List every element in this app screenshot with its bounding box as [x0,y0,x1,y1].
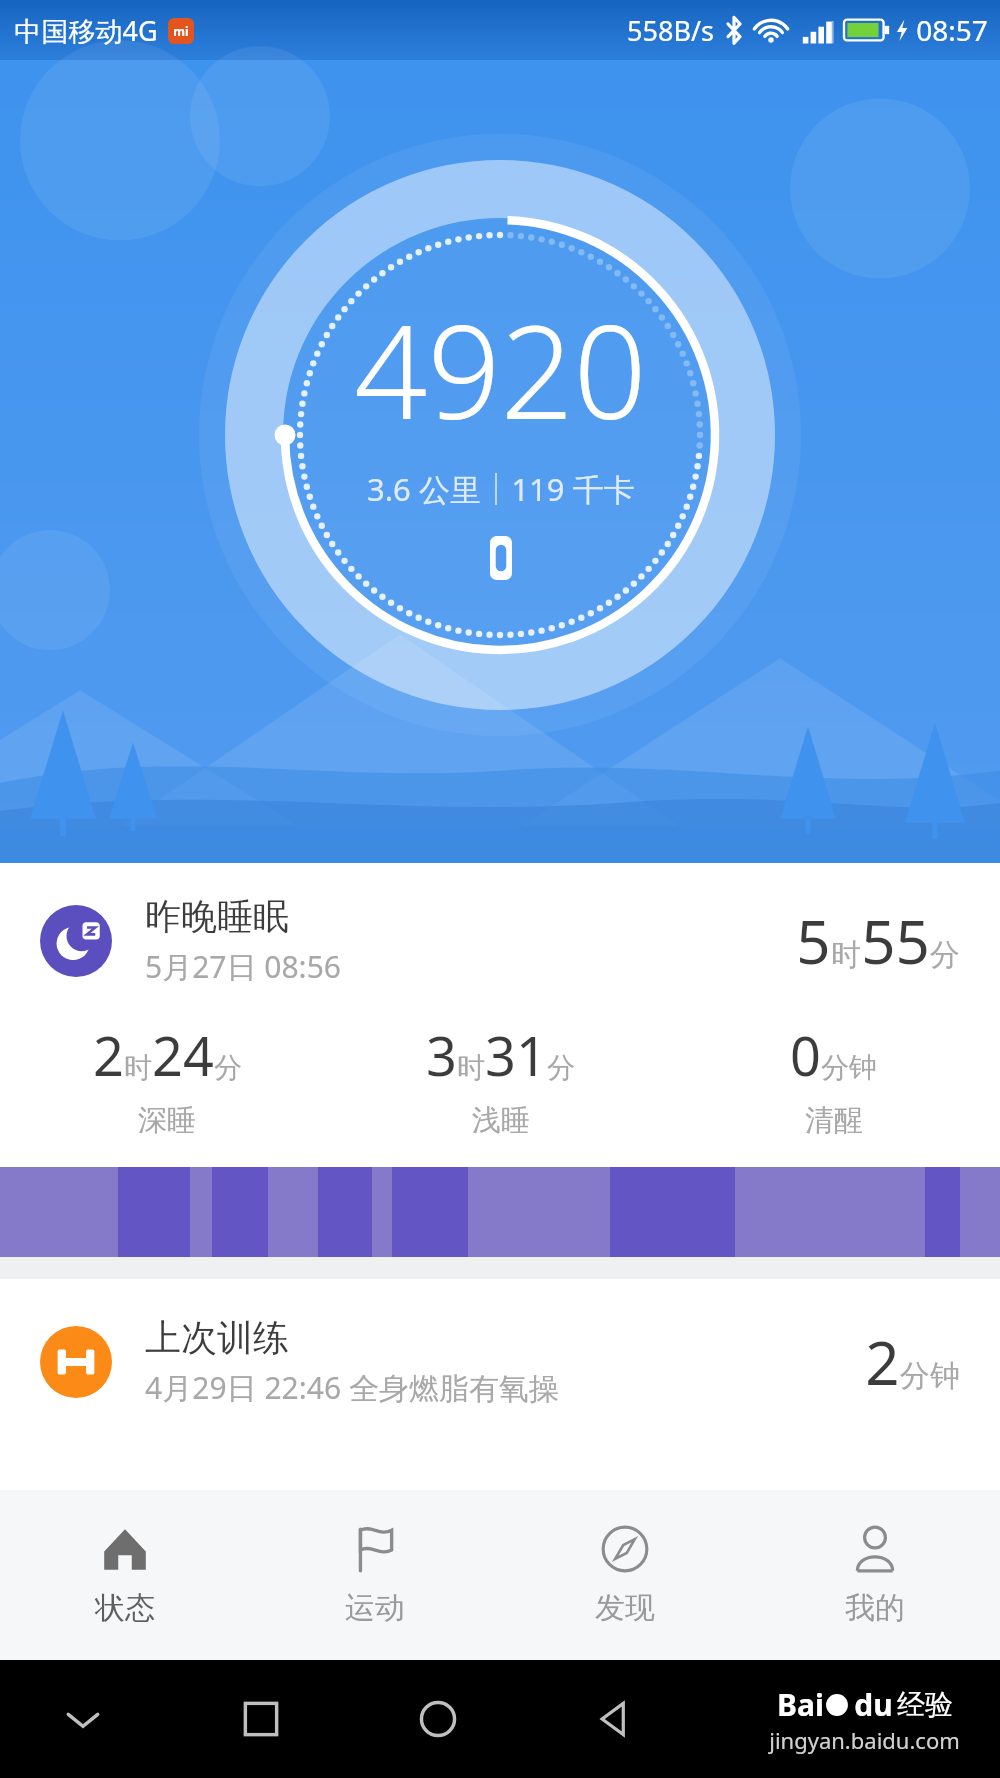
staticText: 4月29日 22:46 全身燃脂有氧操 [145,1367,559,1408]
button[interactable]: 我的 [750,1490,1000,1660]
staticText: 时 [831,936,861,974]
button[interactable]: 运动 [250,1490,500,1660]
staticText: 时 [124,1050,152,1085]
staticText: 分 [547,1050,575,1085]
staticText: 浅睡 [472,1102,530,1139]
button[interactable] [0,1167,1000,1257]
button[interactable]: 上次训练 [0,1279,1000,1444]
staticText: 119 千卡 [511,468,635,510]
button[interactable]: 昨晚睡眠 [0,863,1000,1167]
button[interactable]: Hide keyboard [60,1696,106,1742]
staticText: 分 [930,936,960,974]
staticText: 3 [426,1018,457,1092]
staticText: Bai [777,1684,824,1725]
staticText: 中国移动4G [14,12,158,49]
staticText: 55 [861,900,930,982]
button[interactable]: Back [592,1696,638,1742]
staticText: 发现 [595,1589,655,1627]
staticText: 3.6 公里 [367,468,481,510]
staticText: 5 [796,900,831,982]
other: Band [490,536,512,580]
staticText: 5月27日 08:56 [145,946,341,987]
staticText: 清醒 [805,1102,863,1139]
staticText: 2 [865,1321,900,1403]
staticText: 时 [457,1050,485,1085]
staticText: du [850,1684,897,1725]
staticText: 分钟 [900,1357,960,1395]
staticText: mi [173,23,189,39]
staticText: 分 [214,1050,242,1085]
staticText: 经验 [897,1687,953,1722]
staticText: 我的 [845,1589,905,1627]
staticText: 2 [93,1018,124,1092]
staticText: 08:57 [916,11,988,49]
button[interactable]: Home [415,1696,461,1742]
staticText: 4920 [354,282,647,456]
button[interactable]: 发现 [500,1490,750,1660]
staticText: 31 [485,1018,547,1092]
staticText: jingyan.baidu.com [769,1725,960,1755]
staticText: 状态 [95,1589,155,1627]
staticText: 分钟 [821,1050,877,1085]
staticText: 运动 [345,1589,405,1627]
staticText: 上次训练 [145,1315,289,1360]
staticText: 0 [790,1018,821,1092]
staticText: 深睡 [138,1102,196,1139]
button[interactable]: 状态 [0,1490,250,1660]
staticText: 558B/s [627,12,714,49]
button[interactable]: Recents [238,1696,284,1742]
staticText: 24 [152,1018,214,1092]
staticText: 昨晚睡眠 [145,894,289,939]
